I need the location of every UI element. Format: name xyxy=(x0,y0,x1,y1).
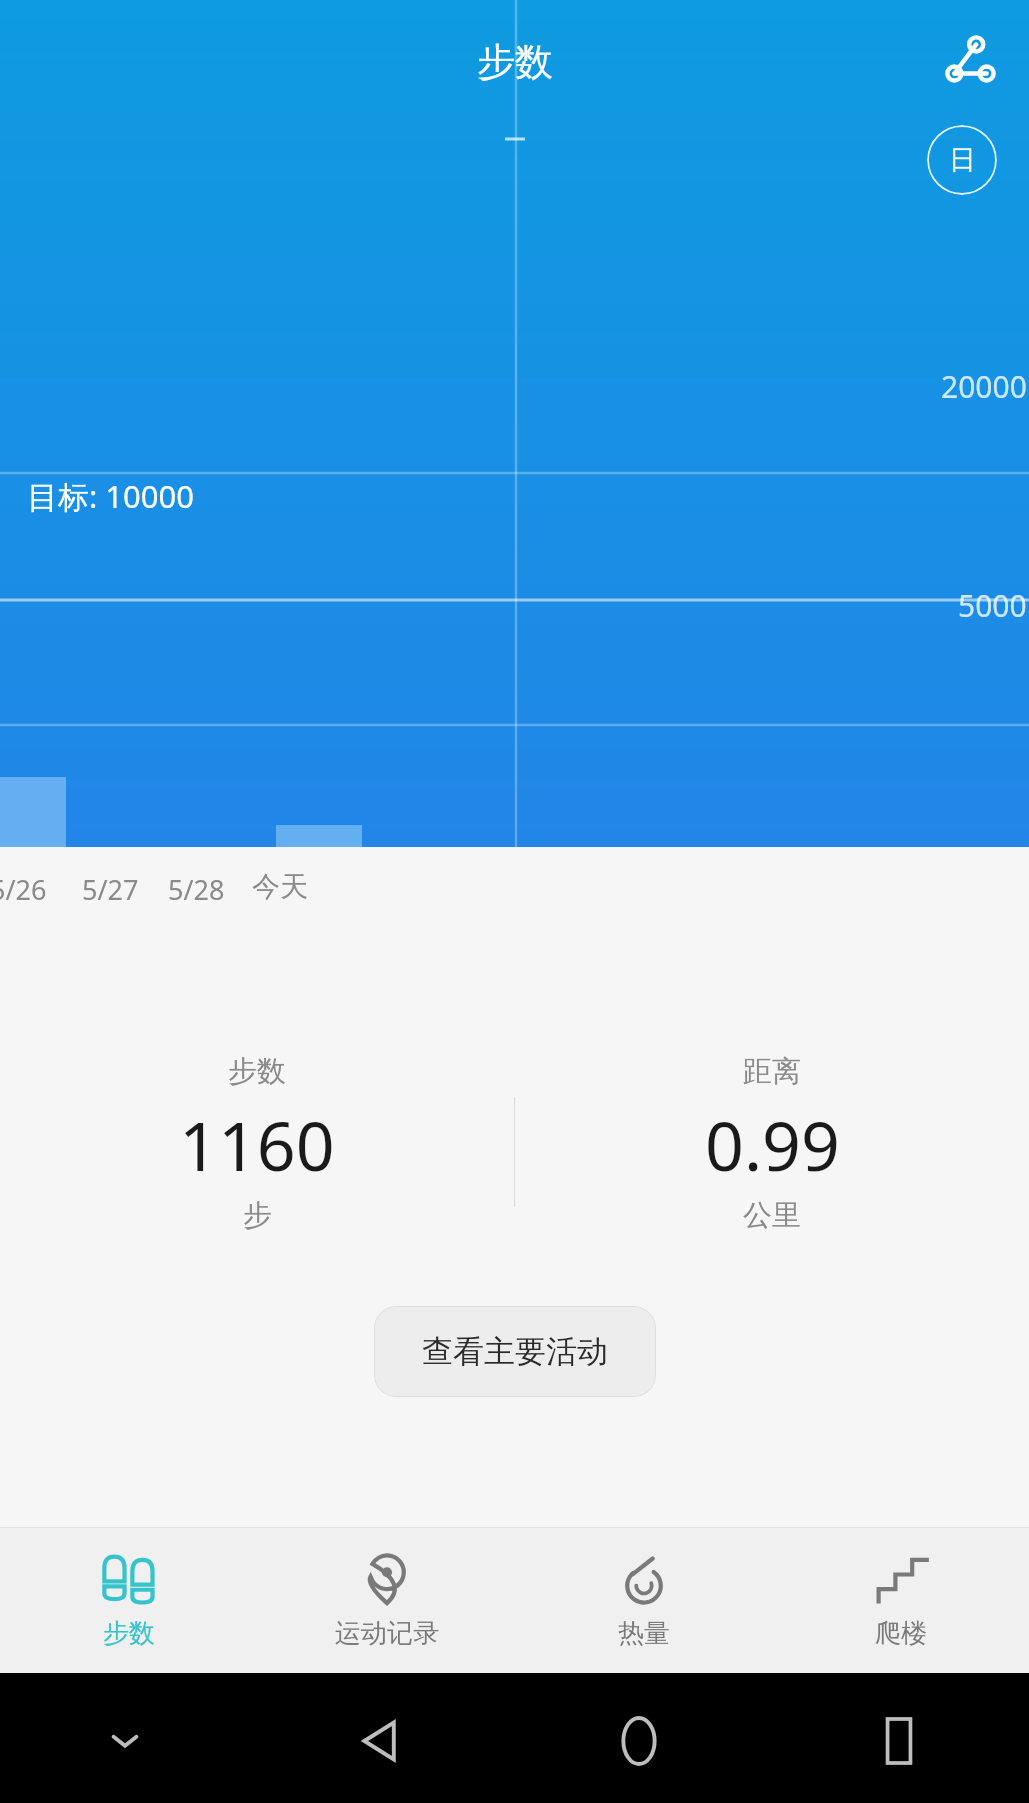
button[interactable]: 日 xyxy=(927,125,997,195)
staticText: 5/27 xyxy=(82,871,139,908)
button[interactable]: 查看主要活动 xyxy=(374,1306,656,1397)
staticText: 0.99 xyxy=(705,1098,840,1191)
staticText: 步数 xyxy=(477,38,553,86)
staticText: 目标: 10000 xyxy=(27,475,195,517)
staticText: 20000 xyxy=(941,366,1027,407)
button[interactable]: Hide keyboard xyxy=(90,1706,160,1776)
button[interactable]: Recent apps xyxy=(859,1701,939,1781)
staticText: 爬楼 xyxy=(875,1617,927,1650)
staticText: 5/26 xyxy=(0,871,47,908)
button[interactable]: Back xyxy=(340,1701,420,1781)
button[interactable]: 爬楼 xyxy=(772,1528,1029,1673)
staticText: 公里 xyxy=(743,1197,801,1234)
staticText: 运动记录 xyxy=(335,1617,439,1650)
staticText: 查看主要活动 xyxy=(422,1332,608,1371)
staticText: 距离 xyxy=(743,1053,801,1090)
button[interactable]: 热量 xyxy=(515,1528,772,1673)
button[interactable]: 步数 xyxy=(0,1528,258,1673)
staticText: 5/28 xyxy=(168,871,225,908)
staticText: 步数 xyxy=(103,1617,155,1650)
staticText: 步数 xyxy=(228,1053,286,1090)
staticText: 5000 xyxy=(958,585,1027,626)
button[interactable]: 运动记录 xyxy=(258,1528,515,1673)
staticText: 步 xyxy=(243,1197,272,1234)
staticText: 热量 xyxy=(618,1617,670,1650)
staticText: 日 xyxy=(949,143,976,177)
button[interactable]: Home xyxy=(599,1701,679,1781)
button[interactable]: 分享 xyxy=(933,22,1009,98)
staticText: 今天 xyxy=(252,869,308,904)
staticText: 1160 xyxy=(179,1098,335,1191)
